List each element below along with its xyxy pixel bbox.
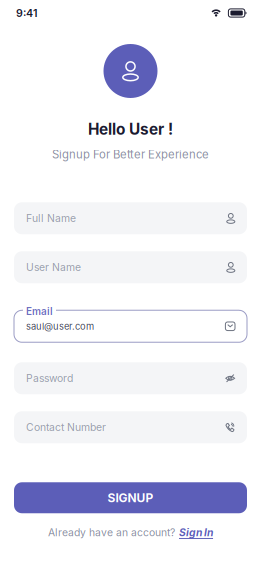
staticText: Full Name <box>26 212 76 225</box>
button[interactable]: saul@user.com <box>14 300 247 345</box>
button[interactable]: Password <box>14 362 247 394</box>
staticText: 9:41 <box>16 6 38 19</box>
button[interactable]: Full Name <box>14 202 247 234</box>
staticText: Password <box>26 372 73 385</box>
button[interactable]: Sign In <box>179 526 213 539</box>
staticText: Sign In <box>179 526 213 539</box>
button[interactable]: Contact Number <box>14 411 247 443</box>
staticText: Signup For Better Experience <box>52 148 209 161</box>
button[interactable]: User Name <box>14 251 247 283</box>
button[interactable]: SIGNUP <box>14 482 247 513</box>
staticText: User Name <box>26 261 81 274</box>
staticText: SIGNUP <box>107 490 153 505</box>
staticText: saul@user.com <box>26 321 94 332</box>
staticText: Hello User ! <box>88 120 173 139</box>
staticText: Email <box>26 305 53 317</box>
staticText: Contact Number <box>26 421 106 434</box>
staticText: Already have an account? <box>48 526 175 539</box>
